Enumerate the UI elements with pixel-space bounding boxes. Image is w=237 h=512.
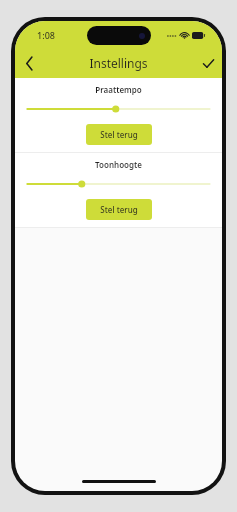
button[interactable]: Back [15,49,43,77]
staticText: Praattempo [95,84,142,95]
button[interactable] [23,177,214,191]
staticText: 1:08 [37,29,55,41]
staticText: Instellings [89,55,148,71]
button[interactable]: Confirm [194,49,222,77]
button[interactable]: Stel terug [86,199,152,220]
staticText: Stel terug [100,129,138,140]
button[interactable]: Stel terug [86,124,152,145]
staticText: Toonhoogte [95,159,142,170]
staticText: Stel terug [100,204,138,215]
button[interactable] [23,102,214,116]
